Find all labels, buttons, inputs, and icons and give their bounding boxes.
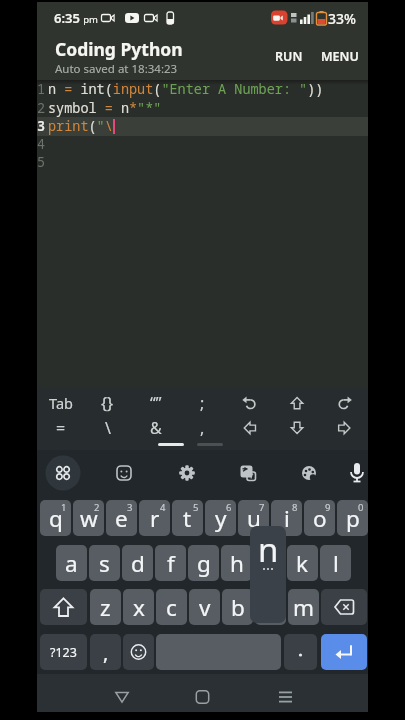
button[interactable] (106, 455, 142, 491)
button[interactable]: Tab (37, 390, 84, 416)
staticText: 3 (37, 117, 45, 135)
staticText: ?123 (50, 644, 77, 661)
button[interactable]: p (337, 500, 368, 536)
staticText: o (313, 503, 327, 534)
button[interactable]: n (255, 589, 286, 625)
button[interactable]: & (132, 415, 179, 441)
button[interactable]: a (56, 545, 87, 581)
staticText: {} (101, 392, 114, 414)
button[interactable] (273, 415, 320, 441)
button[interactable] (123, 634, 154, 670)
button[interactable] (321, 415, 368, 441)
button[interactable] (156, 634, 281, 670)
staticText: c (166, 592, 177, 623)
staticText: MENU (321, 48, 359, 65)
button[interactable]: {} (84, 390, 131, 416)
button[interactable]: q (40, 500, 71, 536)
button[interactable] (40, 589, 87, 625)
button[interactable]: ?123 (40, 634, 87, 670)
button[interactable] (230, 455, 266, 491)
button[interactable] (321, 634, 367, 670)
button[interactable] (226, 415, 273, 441)
button[interactable]: b (222, 589, 253, 625)
staticText: 6 (226, 501, 232, 514)
button[interactable] (339, 455, 375, 491)
button[interactable]: MENU (317, 46, 363, 66)
button[interactable]: y (205, 500, 236, 536)
button[interactable]: z (90, 589, 121, 625)
staticText: 6:35 pm (54, 9, 99, 25)
staticText: print("\ (48, 117, 113, 135)
staticText: n = int(input("Enter A Number: ")) (48, 80, 324, 98)
staticText: s (99, 548, 110, 579)
button[interactable]: m (288, 589, 319, 625)
button[interactable] (45, 455, 81, 491)
staticText: 1 (61, 501, 67, 514)
staticText: w (80, 503, 98, 534)
staticText: ; (200, 392, 205, 414)
button[interactable]: g (188, 545, 219, 581)
button[interactable]: t (172, 500, 203, 536)
staticText: n (258, 527, 279, 572)
staticText: g (197, 548, 211, 579)
staticText: 2 (94, 501, 100, 514)
staticText: v (199, 592, 211, 623)
button[interactable]: h (221, 545, 252, 581)
button[interactable]: x (123, 589, 154, 625)
button[interactable]: v (189, 589, 220, 625)
button[interactable]: f (155, 545, 186, 581)
staticText: q (49, 503, 63, 534)
button[interactable] (321, 589, 367, 625)
button[interactable]: = (37, 415, 84, 441)
button[interactable]: RUN (269, 46, 309, 66)
staticText: f (167, 548, 175, 579)
button[interactable] (284, 634, 317, 670)
button[interactable] (321, 390, 368, 416)
button[interactable]: e (106, 500, 137, 536)
staticText: 5 (37, 153, 45, 171)
button[interactable]: \ (84, 415, 131, 441)
button[interactable]: k (287, 545, 318, 581)
staticText: e (115, 503, 128, 534)
button[interactable]: “” (132, 390, 179, 416)
staticText: 33% (328, 9, 356, 26)
button[interactable]: j (254, 545, 285, 581)
staticText: x (133, 592, 145, 623)
staticText: , (103, 639, 109, 666)
staticText: h (230, 548, 244, 579)
button[interactable]: l (320, 545, 351, 581)
staticText: u (247, 503, 261, 534)
button[interactable]: i (271, 500, 302, 536)
staticText: 5 (193, 501, 199, 514)
button[interactable] (226, 390, 273, 416)
staticText: 9 (325, 501, 331, 514)
button[interactable]: , (179, 415, 226, 441)
button[interactable] (102, 677, 142, 711)
staticText: y (215, 503, 227, 534)
staticText: 7 (259, 501, 265, 514)
button[interactable] (273, 390, 320, 416)
staticText: z (100, 592, 111, 623)
button[interactable]: s (89, 545, 120, 581)
staticText: 1 (37, 80, 45, 98)
button[interactable] (183, 677, 223, 711)
button[interactable] (266, 677, 306, 711)
staticText: t (183, 503, 192, 534)
button[interactable]: w (73, 500, 104, 536)
staticText: l (333, 548, 339, 579)
button[interactable] (169, 455, 205, 491)
staticText: k (296, 548, 309, 579)
button[interactable]: o (304, 500, 335, 536)
button[interactable]: c (156, 589, 187, 625)
staticText: , (200, 417, 205, 439)
staticText: d (131, 548, 145, 579)
button[interactable]: d (122, 545, 153, 581)
button[interactable]: r (139, 500, 170, 536)
button[interactable]: , (90, 634, 121, 670)
staticText: 0 (358, 501, 364, 514)
button[interactable] (291, 455, 327, 491)
button[interactable]: u (238, 500, 269, 536)
staticText: j (267, 548, 273, 579)
button[interactable]: ; (179, 390, 226, 416)
